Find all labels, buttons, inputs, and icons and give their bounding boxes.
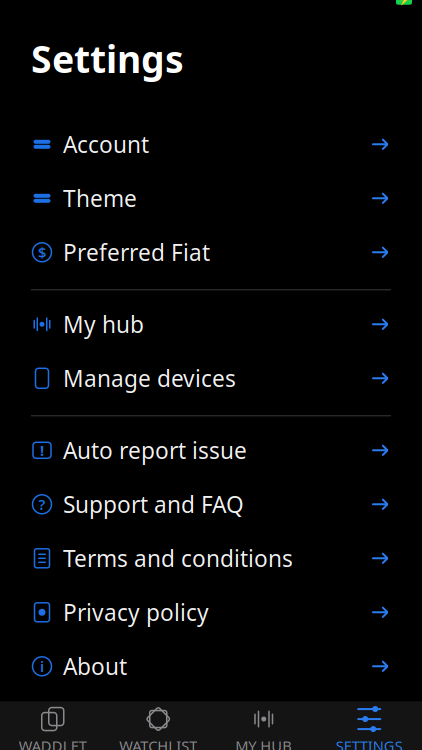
staticText: My hub [63,309,144,339]
staticText: Terms and conditions [63,543,293,573]
staticText: WADDLET [19,736,87,750]
staticText: Account [63,129,149,159]
staticText: ⚡ [397,0,410,6]
staticText: ! [40,440,44,460]
staticText: ? [38,494,45,514]
button[interactable]: Theme [0,171,422,225]
staticText: $ [38,242,46,262]
staticText: Auto report issue [63,435,247,465]
staticText: Privacy policy [63,597,209,627]
button[interactable]: SETTINGS [316,701,422,750]
staticText: WATCHLIST [119,736,197,750]
button[interactable]: Manage devices [0,351,422,405]
staticText: Theme [63,183,137,213]
button[interactable]: MY HUB [211,701,316,750]
button[interactable]: ? [0,477,422,531]
staticText: Preferred Fiat [63,237,210,267]
button[interactable]: $ [0,225,422,279]
staticText: Support and FAQ [63,489,244,519]
button[interactable]: Privacy policy [0,585,422,639]
button[interactable]: ! [0,423,422,477]
staticText: i [40,656,44,676]
button[interactable]: Account [0,117,422,171]
button[interactable]: WADDLET [0,701,105,750]
staticText: Manage devices [63,363,236,393]
staticText: About [63,651,127,681]
staticText: MY HUB [235,736,292,750]
button[interactable]: My hub [0,297,422,351]
button[interactable]: Terms and conditions [0,531,422,585]
staticText: SETTINGS [336,736,403,750]
button[interactable]: WATCHLIST [105,701,211,750]
staticText: Settings [31,34,184,83]
button[interactable]: i [0,639,422,693]
